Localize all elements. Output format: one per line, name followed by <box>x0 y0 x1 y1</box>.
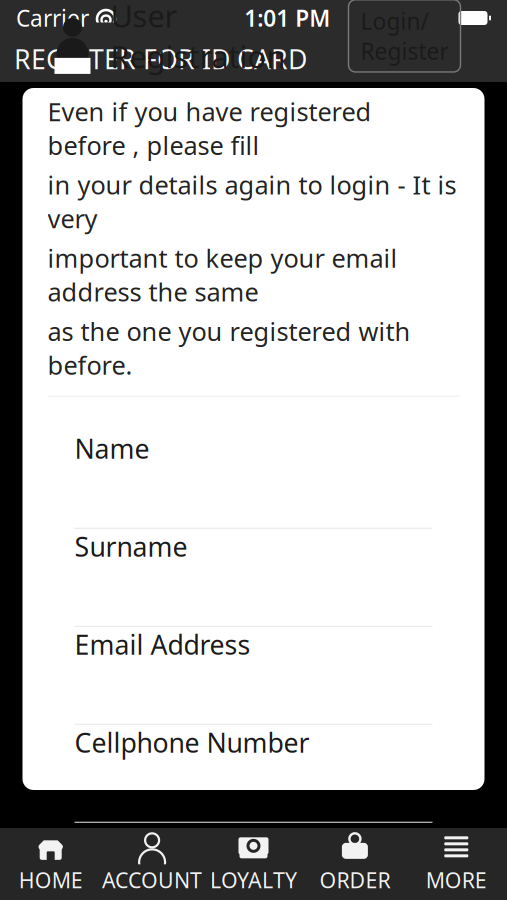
staticText: important to keep your email address the… <box>47 241 397 308</box>
button[interactable]: MORE <box>406 828 507 900</box>
staticText: Why we need this ? <box>64 860 269 890</box>
staticText: Name <box>74 431 149 466</box>
staticText: Even if you have registered before , ple… <box>47 95 371 162</box>
staticText: ORDER <box>319 866 390 894</box>
button[interactable]: LOYALTY <box>203 828 304 900</box>
staticText: Cellphone Number <box>74 725 309 760</box>
staticText: as the one you registered with before. <box>47 314 410 382</box>
staticText: LOYALTY <box>210 866 297 894</box>
staticText: HOME <box>19 866 83 894</box>
staticText: MORE <box>426 866 487 894</box>
staticText: Surname <box>74 529 187 564</box>
button[interactable]: Why we need this ? <box>50 853 283 897</box>
staticText: User Registration <box>110 0 285 77</box>
button[interactable]: ORDER <box>304 828 406 900</box>
button[interactable]: Login/Register <box>348 0 460 72</box>
button[interactable]: ACCOUNT <box>101 828 203 900</box>
staticText: Login/Register <box>360 6 448 66</box>
staticText: Email Address <box>74 627 250 662</box>
button[interactable]: HOME <box>0 828 101 900</box>
staticText: REGISTER FOR ID CARD <box>14 41 307 77</box>
staticText: 1:01 PM <box>244 3 330 33</box>
staticText: Carrier <box>16 3 89 33</box>
staticText: in your details again to login - It is v… <box>47 168 456 235</box>
staticText: ACCOUNT <box>102 866 202 894</box>
